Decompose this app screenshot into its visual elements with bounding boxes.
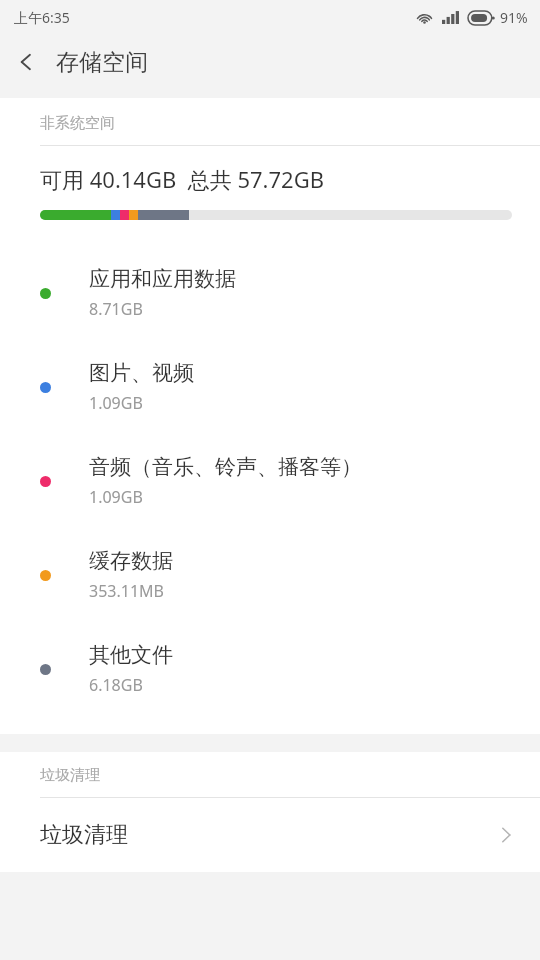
button[interactable]: 应用和应用数据 (0, 246, 540, 340)
button[interactable]: 图片、视频 (0, 340, 540, 434)
staticText: 缓存数据 (89, 548, 173, 574)
staticText: 1.09GB (89, 486, 143, 508)
staticText: 可用 40.14GB 总共 57.72GB (40, 164, 324, 194)
staticText: 垃圾清理 (40, 766, 100, 785)
staticText: 图片、视频 (89, 360, 194, 386)
button[interactable]: 其他文件 (0, 622, 540, 716)
staticText: 垃圾清理 (40, 821, 498, 849)
staticText: 8.71GB (89, 298, 143, 320)
staticText: 353.11MB (89, 580, 164, 602)
staticText: 其他文件 (89, 642, 173, 668)
button[interactable]: 垃圾清理 (0, 798, 540, 872)
staticText: 91% (500, 8, 528, 27)
staticText: 音频（音乐、铃声、播客等） (89, 454, 362, 480)
staticText: 存储空间 (56, 48, 148, 77)
other: Open (498, 827, 514, 843)
staticText: 6.18GB (89, 674, 143, 696)
staticText: 应用和应用数据 (89, 266, 236, 292)
staticText: 1.09GB (89, 392, 143, 414)
button[interactable]: Back (0, 36, 52, 88)
staticText: 非系统空间 (40, 114, 115, 133)
button[interactable]: 音频（音乐、铃声、播客等） (0, 434, 540, 528)
staticText: 上午6:35 (14, 8, 70, 27)
button[interactable]: 缓存数据 (0, 528, 540, 622)
